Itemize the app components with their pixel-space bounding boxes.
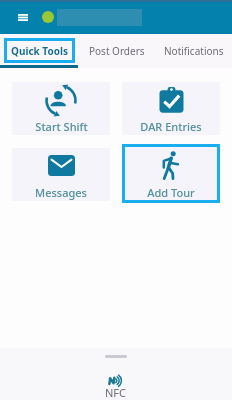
staticText: Add Tour (147, 185, 195, 200)
staticText: Start Shift (35, 119, 88, 134)
button[interactable]: Start Shift (12, 82, 110, 135)
staticText: DAR Entries (140, 119, 202, 134)
button[interactable]: Quick Tools (0, 34, 78, 68)
button[interactable]: Menu (14, 8, 32, 26)
staticText: Notifications (164, 44, 224, 58)
button[interactable]: Notifications (155, 34, 232, 68)
button[interactable]: NFC (105, 376, 127, 400)
button[interactable]: Post Orders (78, 34, 155, 68)
staticText: Messages (35, 185, 87, 200)
button[interactable]: Add Tour (122, 148, 220, 201)
button[interactable]: DAR Entries (122, 82, 220, 135)
staticText: NFC (105, 385, 127, 400)
button[interactable]: Messages (12, 148, 110, 201)
staticText: Quick Tools (11, 44, 68, 58)
staticText: Post Orders (89, 44, 145, 58)
